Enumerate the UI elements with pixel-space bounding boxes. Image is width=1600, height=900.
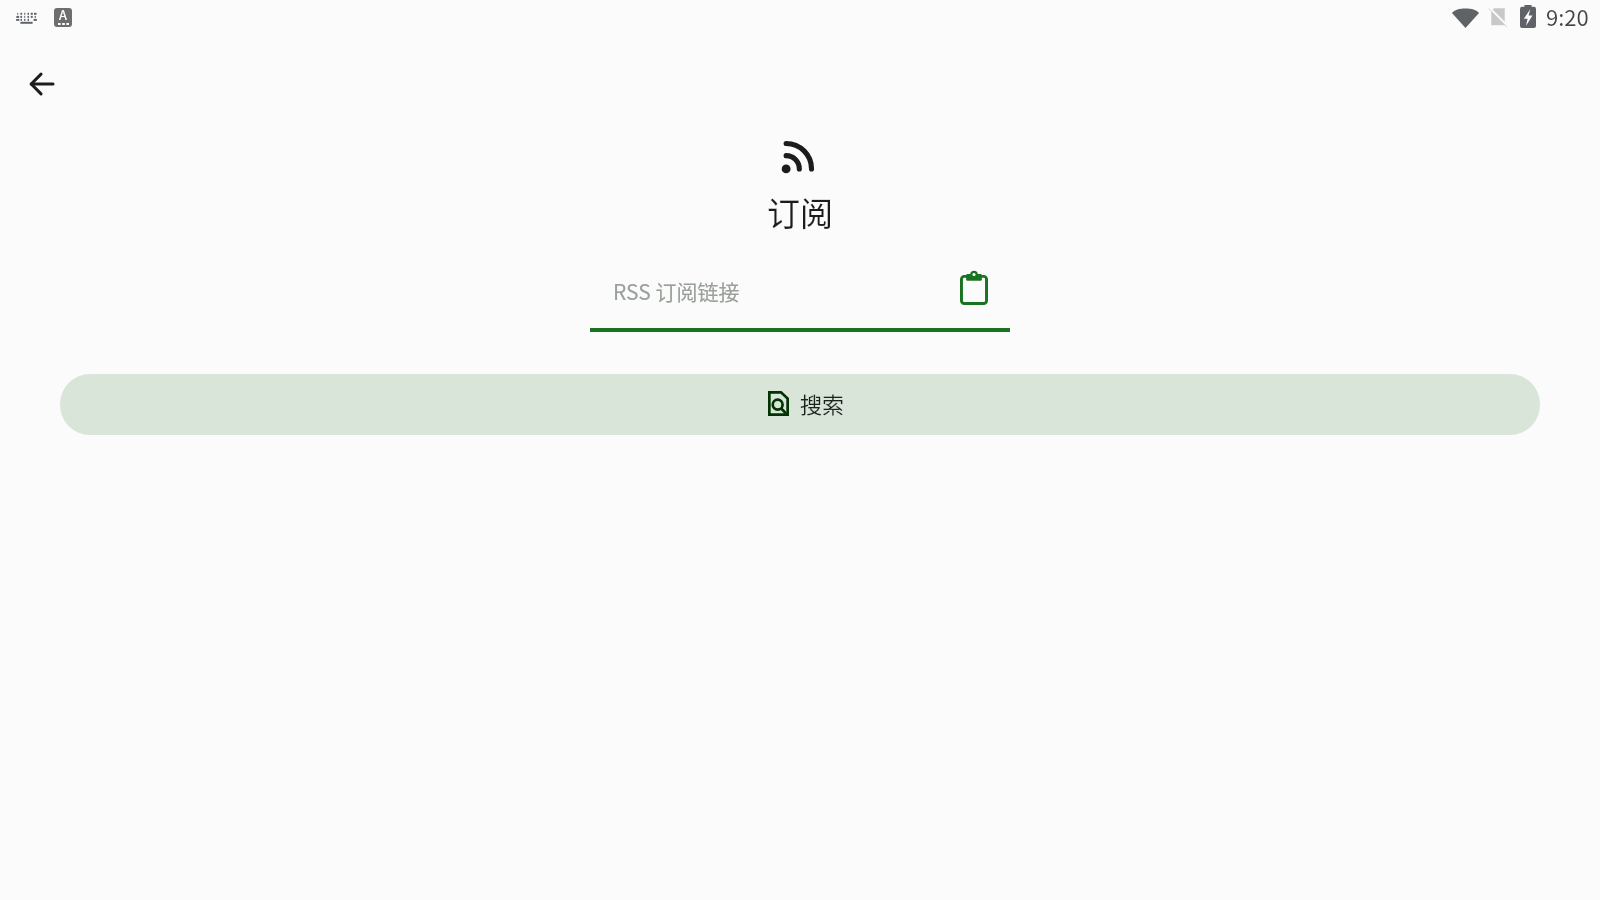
staticText: RSS 订阅链接 [613, 276, 740, 306]
button[interactable]: RSS 订阅链接 [590, 255, 962, 331]
button[interactable]: Paste from clipboard [950, 264, 998, 312]
staticText: A [59, 8, 67, 24]
staticText: 订阅 [767, 188, 833, 236]
button[interactable]: Back [18, 60, 66, 108]
staticText: 9:20 [1546, 0, 1589, 32]
button[interactable]: 搜索 [60, 374, 1540, 435]
staticText: 搜索 [800, 387, 845, 419]
